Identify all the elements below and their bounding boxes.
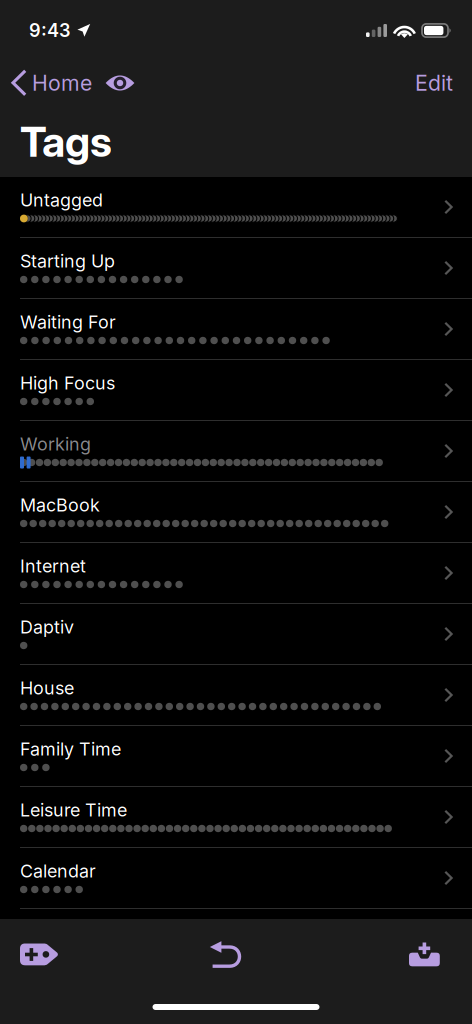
staticText: Edit (415, 70, 453, 96)
staticText: MacBook (20, 494, 100, 516)
button[interactable]: Leisure Time (0, 787, 472, 848)
button[interactable]: Starting Up (0, 238, 472, 299)
staticText: Family Time (20, 738, 121, 760)
staticText: Starting Up (20, 250, 115, 272)
staticText: Tags (20, 116, 112, 167)
button[interactable]: House (0, 665, 472, 726)
staticText: 9:43 (29, 19, 71, 41)
staticText: Calendar (20, 860, 96, 882)
staticText: Untagged (20, 189, 103, 211)
button[interactable]: Internet (0, 543, 472, 604)
button[interactable]: Untagged (0, 177, 472, 238)
button[interactable]: Waiting For (0, 299, 472, 360)
button[interactable]: Preview (96, 61, 144, 105)
staticText: Daptiv (20, 616, 74, 638)
staticText: Internet (20, 555, 86, 577)
button[interactable]: Daptiv (0, 604, 472, 665)
staticText: High Focus (20, 372, 115, 394)
button[interactable]: Edit (395, 61, 472, 105)
button[interactable]: Working (0, 421, 472, 482)
button[interactable]: New tag (0, 919, 134, 990)
staticText: Waiting For (20, 311, 116, 333)
staticText: Home (32, 70, 92, 96)
button[interactable]: Home (0, 61, 96, 105)
staticText: Leisure Time (20, 799, 127, 821)
button[interactable]: High Focus (0, 360, 472, 421)
staticText: Working (20, 433, 91, 455)
button[interactable]: MacBook (0, 482, 472, 543)
staticText: House (20, 677, 74, 699)
button[interactable]: Calendar (0, 848, 472, 909)
button[interactable]: Add to inbox (286, 919, 472, 990)
button[interactable]: Family Time (0, 726, 472, 787)
button[interactable]: Undo (134, 919, 286, 990)
